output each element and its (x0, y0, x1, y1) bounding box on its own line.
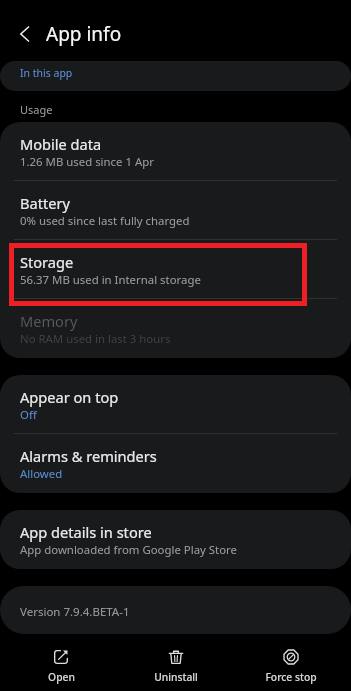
button[interactable]: Uninstall (118, 634, 233, 691)
staticText: App details in store (20, 522, 152, 542)
button[interactable]: Battery (0, 181, 351, 240)
staticText: Version 7.9.4.BETA-1 (20, 604, 130, 620)
staticText: In this app (20, 66, 73, 80)
staticText: Off (20, 407, 37, 423)
button[interactable]: Storage (0, 240, 351, 299)
staticText: Battery (20, 193, 70, 213)
staticText: Force stop (265, 670, 317, 684)
button[interactable]: Back (7, 17, 41, 51)
button[interactable]: App details in store (0, 510, 351, 569)
staticText: Mobile data (20, 134, 102, 154)
staticText: Allowed (20, 466, 63, 482)
button[interactable]: Appear on top (0, 375, 351, 434)
staticText: 56.37 MB used in Internal storage (20, 272, 201, 288)
staticText: 1.26 MB used since 1 Apr (20, 154, 154, 170)
button[interactable]: Mobile data (0, 122, 351, 181)
staticText: App info (46, 21, 122, 47)
button[interactable]: In this app (0, 61, 351, 91)
staticText: Uninstall (154, 670, 198, 684)
button[interactable]: Memory (0, 299, 351, 358)
staticText: Appear on top (20, 387, 119, 407)
button[interactable]: Open (4, 634, 118, 691)
staticText: No RAM used in last 3 hours (20, 331, 171, 347)
staticText: 0% used since last fully charged (20, 213, 190, 229)
staticText: App downloaded from Google Play Store (20, 542, 237, 558)
staticText: Open (48, 670, 75, 684)
staticText: Memory (20, 311, 78, 331)
staticText: Usage (20, 102, 53, 117)
staticText: Alarms & reminders (20, 446, 157, 466)
button[interactable]: Force stop (233, 634, 348, 691)
button[interactable]: Alarms & reminders (0, 434, 351, 493)
staticText: Storage (20, 252, 74, 272)
